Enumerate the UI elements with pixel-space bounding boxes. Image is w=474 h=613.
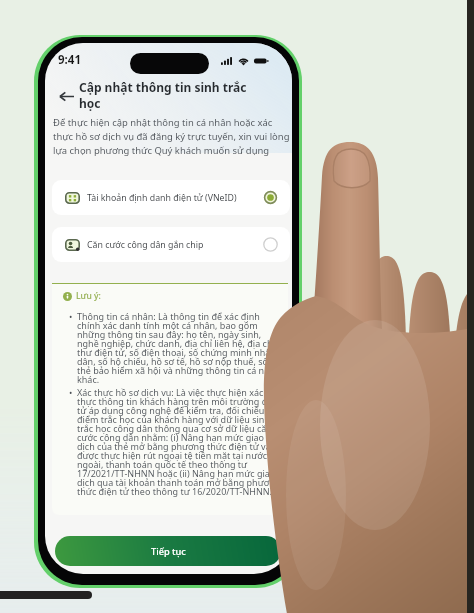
button[interactable]: Căn cước công dân gắn chip [52, 227, 290, 262]
button[interactable]: Tài khoản định danh điện tử (VNeID) [52, 180, 290, 215]
staticText: Thông tin cá nhân: Là thông tin để xác đ… [77, 310, 284, 386]
staticText: Căn cước công dân gắn chip [87, 239, 204, 251]
staticText: Tài khoản định danh điện tử (VNeID) [87, 192, 237, 204]
staticText: • [69, 386, 73, 398]
staticText: Xác thực hồ sơ dịch vụ: Là việc thực hiệ… [77, 386, 284, 498]
staticText: Cập nhật thông tin sinh trắc học [79, 79, 269, 112]
staticText: Tiếp tục [151, 545, 186, 558]
staticText: • [69, 310, 73, 322]
staticText: Lưu ý: [76, 290, 101, 302]
staticText: Để thực hiện cập nhật thông tin cá nhân … [53, 116, 290, 157]
button[interactable]: Back [50, 83, 82, 109]
staticText: 9:41 [58, 52, 81, 68]
button[interactable]: Tiếp tục [55, 536, 281, 566]
